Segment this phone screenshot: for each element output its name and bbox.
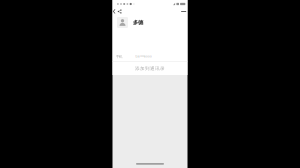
button[interactable]: More [180, 9, 187, 14]
button[interactable]: Back [113, 9, 116, 14]
button[interactable]: Share [117, 9, 122, 14]
staticText: 138****8000 [135, 55, 152, 58]
button[interactable]: 添加到通讯录 [112, 62, 187, 75]
staticText: 手机 [116, 54, 122, 59]
staticText: 添加到通讯录 [135, 66, 165, 71]
staticText: 多德 [133, 19, 143, 26]
